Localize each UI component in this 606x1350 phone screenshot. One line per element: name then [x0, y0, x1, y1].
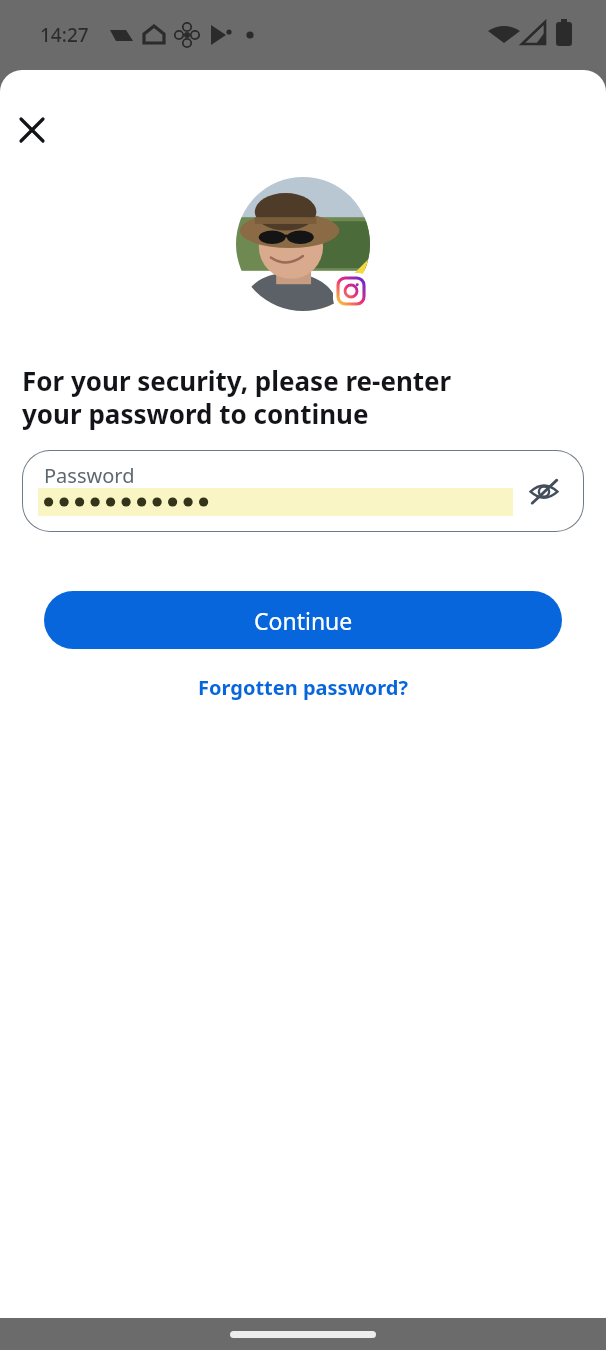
staticText: Password [44, 462, 135, 489]
staticText: For your security, please re-enter your … [22, 363, 502, 432]
button[interactable]: Close [8, 106, 56, 154]
button[interactable]: Forgotten password? [0, 666, 606, 708]
button[interactable]: Password [22, 450, 584, 532]
staticText: Continue [254, 605, 353, 636]
staticText: Forgotten password? [198, 674, 408, 701]
button[interactable]: Continue [44, 591, 562, 649]
staticText: 14:27 [40, 22, 89, 48]
button[interactable]: Show password [522, 469, 566, 513]
